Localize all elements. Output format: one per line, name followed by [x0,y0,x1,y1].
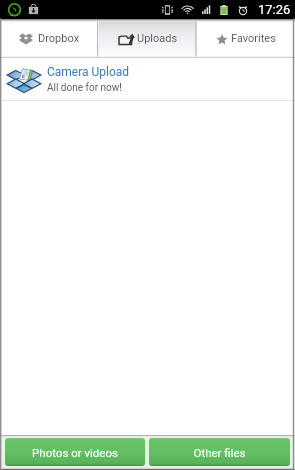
button[interactable]: Other files [149,438,290,466]
staticText: 17:26 [258,2,291,17]
staticText: Other files [193,446,246,459]
staticText: Dropbox [38,32,80,45]
button[interactable]: Dropbox [0,19,99,58]
button[interactable]: Uploads [99,19,197,58]
staticText: Camera Upload [47,65,130,79]
button[interactable]: Camera Upload [0,58,295,100]
staticText: All done for now! [47,82,122,94]
button[interactable]: Favorites [197,19,295,58]
button[interactable]: Photos or videos [5,438,145,466]
staticText: Photos or videos [32,446,118,459]
staticText: Favorites [231,32,276,45]
staticText: Uploads [137,32,178,45]
